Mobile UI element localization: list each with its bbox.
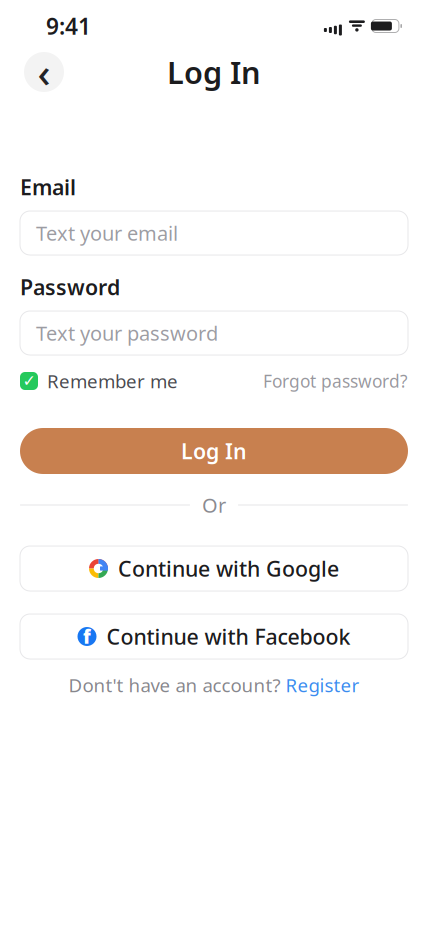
staticText: Text your password (36, 320, 218, 346)
staticText: Continue with Facebook (106, 622, 350, 651)
staticText: f (83, 624, 91, 649)
staticText: Log In (167, 52, 261, 92)
staticText: Remember me (47, 369, 178, 393)
staticText: Text your email (36, 220, 178, 246)
button[interactable]: Log In (20, 428, 408, 474)
button[interactable]: Continue with Google (20, 546, 408, 591)
button[interactable]: Back (24, 52, 64, 92)
staticText: Dont't have an account? (68, 673, 285, 697)
staticText: Log In (181, 437, 247, 465)
button[interactable]: Forgot password? (263, 369, 408, 393)
staticText: Or (202, 492, 226, 518)
staticText: Register (285, 673, 359, 697)
button[interactable]: ✓ (20, 369, 178, 393)
staticText: Email (20, 173, 76, 201)
staticText: Forgot password? (263, 369, 408, 392)
staticText: Password (20, 273, 120, 301)
button[interactable]: Text your password (20, 311, 408, 355)
staticText: 9:41 (46, 11, 91, 41)
staticText: ✓ (22, 372, 35, 390)
button[interactable]: Text your email (20, 211, 408, 255)
button[interactable]: Register (285, 673, 359, 697)
staticText: Continue with Google (118, 554, 339, 583)
staticText: ‹ (37, 45, 50, 98)
button[interactable]: f (20, 614, 408, 659)
